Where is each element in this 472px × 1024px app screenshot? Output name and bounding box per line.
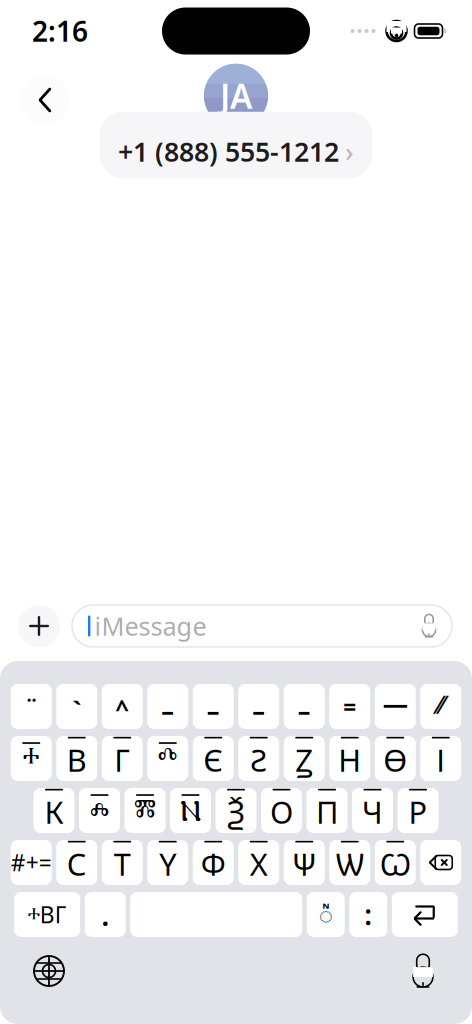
- staticText: iMessage: [94, 609, 206, 643]
- staticText: В: [67, 739, 87, 780]
- staticText: ¨: [25, 693, 38, 723]
- staticText: Р: [408, 791, 427, 832]
- button[interactable]: ¨: [11, 684, 52, 729]
- button[interactable]: ⰰВГ: [14, 892, 80, 937]
- button[interactable]: ᷡ: [307, 892, 345, 937]
- staticText: Ⲛ: [180, 797, 201, 827]
- staticText: ›: [345, 134, 354, 169]
- button[interactable]: .: [85, 892, 126, 937]
- button[interactable]: Ѯ: [215, 788, 256, 833]
- staticText: JA: [220, 74, 252, 118]
- button[interactable]: Ѳ: [375, 736, 416, 781]
- button[interactable]: ⰾ: [79, 788, 120, 833]
- button[interactable]: С: [56, 840, 97, 885]
- button[interactable]: #+=: [11, 840, 52, 885]
- button[interactable]: Ѱ: [284, 840, 325, 885]
- button[interactable]: К: [33, 788, 74, 833]
- button[interactable]: Р: [397, 788, 438, 833]
- staticText: Т: [114, 843, 131, 884]
- button[interactable]: Add attachment: [18, 605, 60, 647]
- button[interactable]: Ⲛ: [170, 788, 211, 833]
- staticText: К: [44, 791, 63, 832]
- button[interactable]: Х: [238, 840, 279, 885]
- staticText: 2:16: [32, 12, 88, 50]
- button[interactable]: П: [306, 788, 347, 833]
- staticText: Н: [338, 739, 361, 780]
- staticText: Є: [203, 739, 223, 780]
- button[interactable]: –: [193, 684, 234, 729]
- button[interactable]: В: [56, 736, 97, 781]
- button[interactable]: Next keyboard: [26, 948, 72, 994]
- staticText: –: [207, 693, 220, 727]
- staticText: ^: [115, 692, 129, 724]
- staticText: Ꙁ: [295, 739, 313, 780]
- button[interactable]: Dictation: [400, 948, 446, 994]
- staticText: Ѳ: [383, 739, 407, 780]
- staticText: С: [67, 843, 87, 884]
- button[interactable]: Ꙁ: [284, 736, 325, 781]
- staticText: Г: [114, 739, 130, 780]
- button[interactable]: Ү: [147, 840, 188, 885]
- button[interactable]: Ф: [193, 840, 234, 885]
- staticText: #+=: [11, 847, 52, 877]
- button[interactable]: :: [349, 892, 387, 937]
- staticText: –: [161, 693, 174, 727]
- staticText: `: [72, 693, 81, 727]
- button[interactable]: Н: [329, 736, 370, 781]
- staticText: Ч: [362, 791, 383, 832]
- button[interactable]: ⰰ: [11, 736, 52, 781]
- button[interactable]: Ꙍ: [375, 840, 416, 885]
- staticText: Ѡ: [336, 843, 364, 884]
- staticText: .: [101, 895, 109, 934]
- staticText: Ѱ: [292, 843, 317, 884]
- button[interactable]: ^: [102, 684, 143, 729]
- staticText: Ѯ: [227, 791, 245, 832]
- staticText: ᷡ: [319, 899, 333, 930]
- button[interactable]: Back: [20, 75, 70, 125]
- button[interactable]: =: [329, 684, 370, 729]
- staticText: Ф: [201, 843, 226, 884]
- staticText: І: [436, 739, 445, 780]
- staticText: ⰰВГ: [28, 899, 67, 929]
- button[interactable]: Ч: [352, 788, 393, 833]
- button[interactable]: ⰴ: [147, 736, 188, 781]
- staticText: ⁄⁄: [438, 687, 444, 721]
- staticText: ⰴ: [158, 745, 178, 775]
- button[interactable]: Ѡ: [329, 840, 370, 885]
- staticText: ⰿ: [134, 797, 156, 827]
- button[interactable]: Delete: [420, 840, 461, 885]
- button[interactable]: –: [238, 684, 279, 729]
- staticText: О: [270, 791, 293, 832]
- button[interactable]: Г: [102, 736, 143, 781]
- staticText: –: [252, 693, 265, 727]
- button[interactable]: ⁄⁄: [420, 684, 461, 729]
- staticText: –: [298, 693, 311, 727]
- button[interactable]: ⰿ: [124, 788, 165, 833]
- staticText: Ꙍ: [380, 843, 411, 884]
- staticText: =: [343, 692, 356, 722]
- button[interactable]: –: [284, 684, 325, 729]
- button[interactable]: О: [261, 788, 302, 833]
- button[interactable]: Ꙅ: [238, 736, 279, 781]
- button[interactable]: І: [420, 736, 461, 781]
- button[interactable]: Т: [102, 840, 143, 885]
- button[interactable]: Є: [193, 736, 234, 781]
- button[interactable]: –: [147, 684, 188, 729]
- staticText: ⰾ: [90, 797, 109, 827]
- staticText: Ү: [159, 843, 176, 884]
- staticText: +1 (888) 555-1212: [118, 134, 339, 169]
- button[interactable]: Return: [392, 892, 458, 937]
- staticText: ⰰ: [23, 745, 40, 775]
- staticText: П: [316, 791, 338, 832]
- staticText: :: [364, 896, 372, 933]
- staticText: —: [383, 686, 408, 720]
- button[interactable]: `: [56, 684, 97, 729]
- staticText: Х: [250, 843, 268, 884]
- button[interactable]: JA: [100, 64, 372, 178]
- staticText: Ꙅ: [250, 739, 267, 780]
- button[interactable]: —: [375, 684, 416, 729]
- button[interactable]: iMessage: [72, 605, 452, 647]
